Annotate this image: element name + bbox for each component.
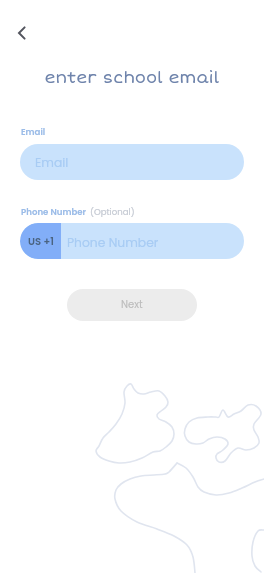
- button[interactable]: Email: [20, 144, 244, 180]
- staticText: Phone Number: [67, 234, 159, 251]
- staticText: Email: [35, 154, 69, 171]
- button[interactable]: Back: [6, 17, 38, 49]
- staticText: Phone Number: [21, 206, 87, 218]
- staticText: Next: [121, 297, 143, 311]
- staticText: (Optional): [90, 206, 135, 218]
- staticText: US +1: [28, 234, 54, 248]
- staticText: Email: [21, 126, 46, 138]
- button[interactable]: US +1: [20, 223, 61, 259]
- button[interactable]: Next: [67, 289, 197, 321]
- staticText: enter school email: [0, 68, 264, 573]
